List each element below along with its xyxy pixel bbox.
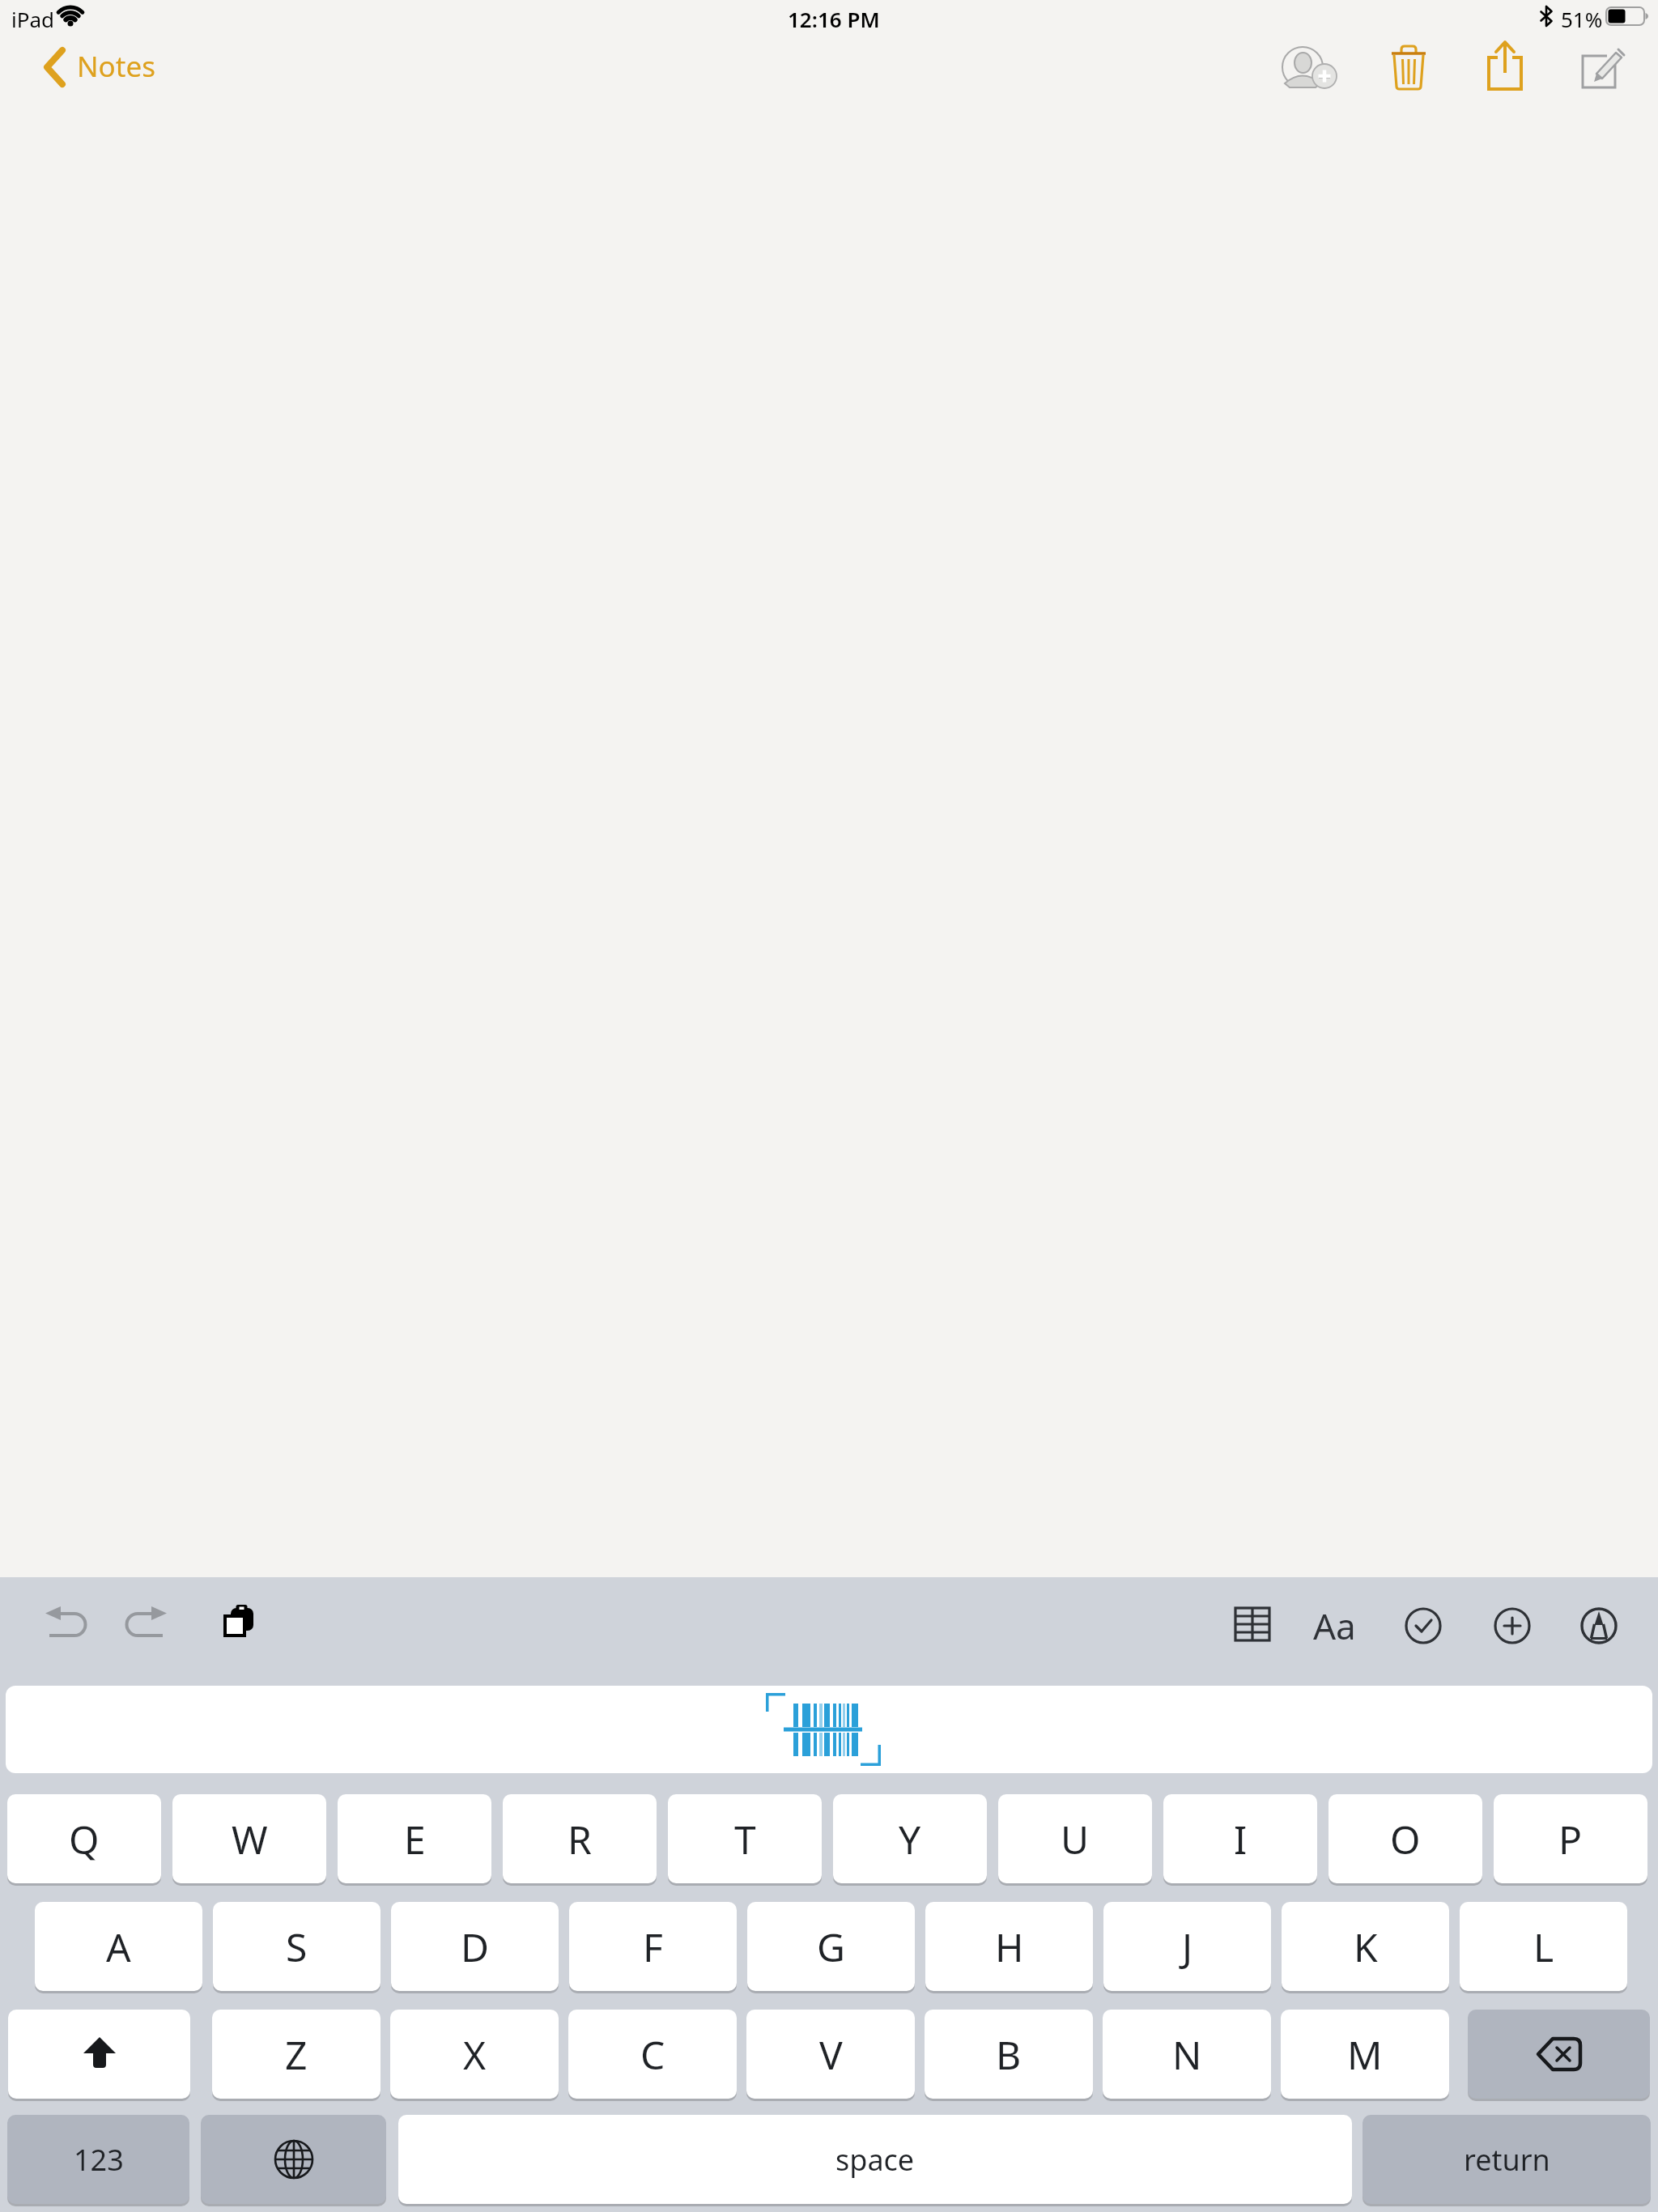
button[interactable]: J — [1103, 1902, 1271, 1991]
button[interactable]: P — [1494, 1794, 1647, 1883]
button[interactable]: Notes — [32, 40, 194, 94]
button[interactable]: T — [668, 1794, 822, 1883]
button[interactable]: B — [925, 2010, 1093, 2099]
button[interactable] — [1405, 1607, 1442, 1644]
button[interactable]: U — [998, 1794, 1152, 1883]
staticText: 123 — [74, 2140, 124, 2180]
button[interactable]: K — [1282, 1902, 1449, 1991]
staticText: N — [1172, 2028, 1202, 2081]
button[interactable]: Z — [212, 2010, 380, 2099]
button[interactable] — [1468, 2010, 1650, 2099]
staticText: 51% — [1561, 5, 1603, 33]
button[interactable]: Y — [833, 1794, 987, 1883]
button[interactable] — [1279, 42, 1341, 92]
button[interactable]: Aa — [1313, 1602, 1370, 1647]
staticText: T — [734, 1813, 756, 1865]
staticText: 12:16 PM — [788, 5, 880, 33]
button[interactable] — [8, 2010, 190, 2099]
staticText: O — [1390, 1813, 1421, 1865]
button[interactable]: I — [1163, 1794, 1317, 1883]
button[interactable] — [1494, 1607, 1531, 1644]
button[interactable]: space — [398, 2115, 1352, 2204]
staticText: F — [643, 1921, 663, 1973]
button[interactable] — [1485, 39, 1525, 92]
staticText: Q — [69, 1813, 100, 1865]
staticText: X — [463, 2028, 487, 2081]
staticText: Y — [899, 1813, 921, 1865]
button[interactable]: return — [1363, 2115, 1651, 2204]
staticText: Aa — [1313, 1602, 1356, 1647]
button[interactable]: W — [172, 1794, 326, 1883]
staticText: I — [1234, 1813, 1248, 1865]
staticText: Notes — [77, 47, 155, 86]
staticText: S — [286, 1921, 308, 1973]
staticText: M — [1347, 2028, 1383, 2081]
button[interactable] — [6, 1686, 1652, 1773]
staticText: E — [404, 1813, 426, 1865]
staticText: H — [995, 1921, 1024, 1973]
staticText: V — [819, 2028, 843, 2081]
staticText: U — [1061, 1813, 1090, 1865]
staticText: return — [1464, 2140, 1550, 2180]
staticText: J — [1182, 1921, 1193, 1973]
staticText: K — [1354, 1921, 1378, 1973]
button[interactable]: O — [1329, 1794, 1482, 1883]
button[interactable]: F — [569, 1902, 737, 1991]
button[interactable]: S — [213, 1902, 380, 1991]
staticText: G — [817, 1921, 845, 1973]
staticText: Z — [285, 2028, 308, 2081]
button[interactable] — [1389, 42, 1428, 91]
button[interactable]: E — [338, 1794, 491, 1883]
button[interactable]: Q — [7, 1794, 161, 1883]
staticText: R — [568, 1813, 592, 1865]
staticText: W — [232, 1813, 268, 1865]
button[interactable]: 123 — [7, 2115, 189, 2204]
button[interactable]: V — [746, 2010, 915, 2099]
staticText: space — [835, 2140, 915, 2180]
button[interactable]: H — [925, 1902, 1093, 1991]
button[interactable] — [1580, 1607, 1618, 1644]
button[interactable]: G — [747, 1902, 915, 1991]
button[interactable] — [223, 1605, 256, 1639]
staticText: C — [640, 2028, 665, 2081]
staticText: D — [461, 1921, 490, 1973]
button[interactable]: N — [1103, 2010, 1271, 2099]
button[interactable] — [1580, 42, 1627, 91]
button[interactable]: R — [503, 1794, 657, 1883]
button[interactable] — [1234, 1606, 1271, 1642]
staticText: L — [1533, 1921, 1554, 1973]
button[interactable]: M — [1281, 2010, 1449, 2099]
staticText: P — [1558, 1813, 1583, 1865]
button[interactable]: D — [391, 1902, 559, 1991]
staticText: B — [996, 2028, 1022, 2081]
button[interactable] — [201, 2115, 386, 2204]
staticText: iPad — [11, 5, 55, 33]
button[interactable]: C — [568, 2010, 737, 2099]
button[interactable] — [42, 1603, 89, 1640]
button[interactable]: X — [390, 2010, 559, 2099]
staticText: A — [106, 1921, 131, 1973]
button[interactable]: A — [35, 1902, 202, 1991]
button[interactable]: L — [1460, 1902, 1627, 1991]
button[interactable] — [123, 1603, 170, 1640]
